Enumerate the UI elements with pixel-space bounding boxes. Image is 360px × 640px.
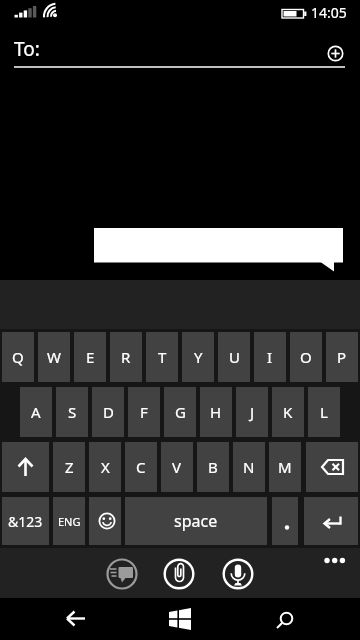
staticText: 14:05: [311, 3, 347, 22]
button[interactable]: B: [197, 442, 229, 492]
button[interactable]: L: [308, 387, 340, 437]
staticText: X: [101, 457, 110, 477]
button[interactable]: ENG: [53, 497, 85, 545]
button[interactable]: G: [164, 387, 196, 437]
staticText: G: [175, 402, 186, 422]
staticText: U: [229, 347, 240, 367]
button[interactable]: [320, 552, 350, 570]
button[interactable]: J: [236, 387, 268, 437]
button[interactable]: Z: [53, 442, 85, 492]
button[interactable]: [166, 605, 194, 633]
staticText: J: [250, 402, 255, 422]
button[interactable]: A: [20, 387, 52, 437]
button[interactable]: Q: [2, 332, 34, 382]
button[interactable]: [304, 497, 358, 545]
button[interactable]: S: [56, 387, 88, 437]
staticText: S: [68, 402, 77, 422]
staticText: ENG: [58, 514, 81, 529]
button[interactable]: U: [218, 332, 250, 382]
button[interactable]: [272, 497, 298, 545]
staticText: P: [337, 347, 347, 367]
staticText: T: [158, 347, 167, 367]
button[interactable]: [60, 604, 92, 632]
staticText: C: [136, 457, 146, 477]
staticText: F: [140, 402, 148, 422]
staticText: M: [278, 457, 292, 477]
button[interactable]: T: [146, 332, 178, 382]
button[interactable]: D: [92, 387, 124, 437]
staticText: L: [320, 402, 328, 422]
button[interactable]: [222, 558, 254, 590]
staticText: D: [103, 402, 114, 422]
button[interactable]: R: [110, 332, 142, 382]
staticText: &123: [8, 512, 43, 531]
button[interactable]: M: [269, 442, 301, 492]
button[interactable]: O: [290, 332, 322, 382]
button[interactable]: V: [161, 442, 193, 492]
staticText: O: [300, 347, 312, 367]
button[interactable]: [106, 558, 138, 590]
staticText: B: [208, 457, 218, 477]
staticText: Q: [12, 347, 24, 367]
button[interactable]: I: [254, 332, 286, 382]
staticText: V: [172, 457, 182, 477]
staticText: H: [210, 402, 222, 422]
button[interactable]: [89, 497, 121, 545]
staticText: I: [267, 347, 273, 367]
button[interactable]: W: [38, 332, 70, 382]
staticText: A: [31, 402, 41, 422]
staticText: W: [47, 347, 61, 367]
staticText: N: [243, 457, 255, 477]
button[interactable]: P: [326, 332, 358, 382]
button[interactable]: &123: [2, 497, 49, 545]
staticText: Z: [65, 457, 74, 477]
button[interactable]: [2, 442, 49, 492]
button[interactable]: space: [125, 497, 267, 545]
staticText: R: [121, 347, 131, 367]
staticText: To:: [14, 36, 40, 62]
button[interactable]: E: [74, 332, 106, 382]
staticText: Y: [194, 347, 203, 367]
button[interactable]: [272, 604, 300, 632]
staticText: K: [283, 402, 293, 422]
button[interactable]: K: [272, 387, 304, 437]
staticText: E: [86, 347, 95, 367]
button[interactable]: Y: [182, 332, 214, 382]
button[interactable]: N: [233, 442, 265, 492]
staticText: space: [174, 510, 218, 532]
button[interactable]: [306, 442, 358, 492]
button[interactable]: H: [200, 387, 232, 437]
button[interactable]: F: [128, 387, 160, 437]
button[interactable]: [163, 558, 195, 590]
button[interactable]: X: [89, 442, 121, 492]
button[interactable]: [325, 43, 346, 64]
button[interactable]: C: [125, 442, 157, 492]
